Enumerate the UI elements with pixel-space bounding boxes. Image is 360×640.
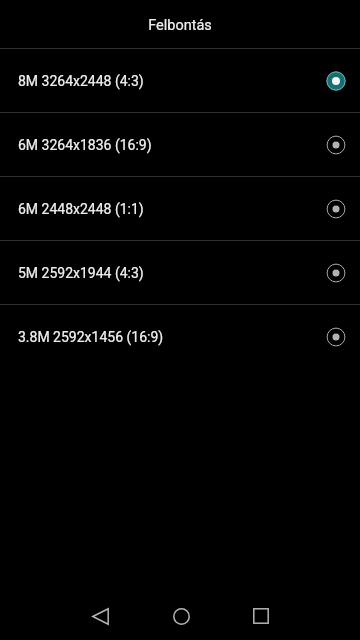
button[interactable]: 5M 2592x1944 (4:3): [0, 241, 360, 304]
button[interactable]: 6M 3264x1836 (16:9): [0, 113, 360, 176]
staticText: 6M 2448x2448 (1:1): [18, 201, 326, 217]
staticText: 6M 3264x1836 (16:9): [18, 137, 326, 153]
staticText: 5M 2592x1944 (4:3): [18, 265, 326, 281]
button[interactable]: 6M 2448x2448 (1:1): [0, 177, 360, 240]
button[interactable]: 8M 3264x2448 (4:3): [0, 49, 360, 112]
staticText: Felbontás: [148, 17, 212, 34]
button[interactable]: Home: [149, 592, 213, 640]
staticText: 3.8M 2592x1456 (16:9): [18, 329, 326, 345]
button[interactable]: Back: [68, 592, 132, 640]
button[interactable]: Recent apps: [229, 592, 293, 640]
button[interactable]: 3.8M 2592x1456 (16:9): [0, 305, 360, 368]
staticText: 8M 3264x2448 (4:3): [18, 73, 326, 89]
